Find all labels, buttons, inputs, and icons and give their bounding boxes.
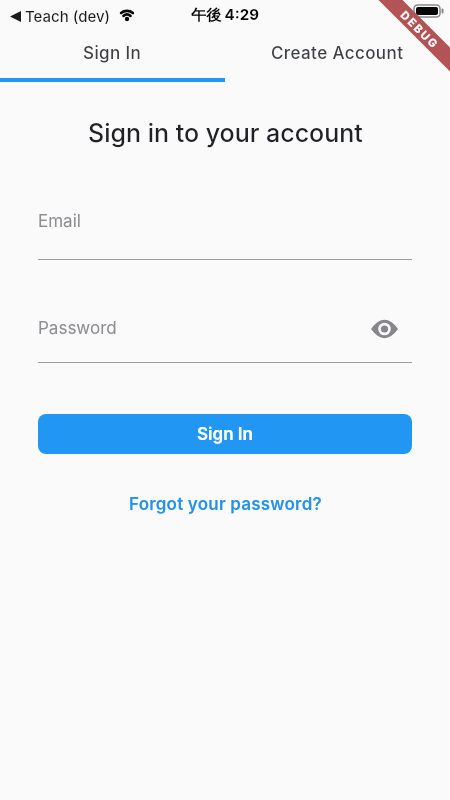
staticText: Sign In <box>83 43 142 64</box>
staticText: Teach (dev) <box>25 7 111 25</box>
staticText: Create Account <box>271 43 404 64</box>
staticText: Sign in to your account <box>88 118 363 148</box>
button[interactable]: Sign In <box>38 414 412 454</box>
staticText: Password <box>38 318 117 339</box>
staticText: DEBUG <box>398 8 442 52</box>
staticText: Sign In <box>197 424 253 445</box>
staticText: Email <box>38 211 81 232</box>
button[interactable]: Forgot your password? <box>129 494 322 515</box>
staticText: 午後 4:29 <box>191 5 259 24</box>
button[interactable]: Sign In <box>0 30 225 76</box>
button[interactable]: Create Account <box>225 30 450 76</box>
button[interactable] <box>371 320 398 338</box>
